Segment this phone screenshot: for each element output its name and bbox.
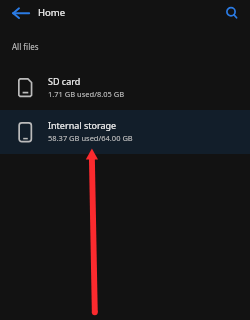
- button[interactable]: Navigate up: [12, 4, 30, 22]
- staticText: SD card: [48, 75, 81, 87]
- staticText: Home: [38, 6, 66, 19]
- button[interactable]: Internal storage: [0, 110, 250, 154]
- staticText: 58.37 GB used/64.00 GB: [48, 133, 133, 143]
- staticText: All files: [12, 41, 39, 52]
- staticText: 1.71 GB used/8.05 GB: [48, 89, 125, 99]
- staticText: Internal storage: [48, 119, 117, 131]
- button[interactable]: SD card: [0, 66, 250, 110]
- button[interactable]: Search: [222, 4, 240, 22]
